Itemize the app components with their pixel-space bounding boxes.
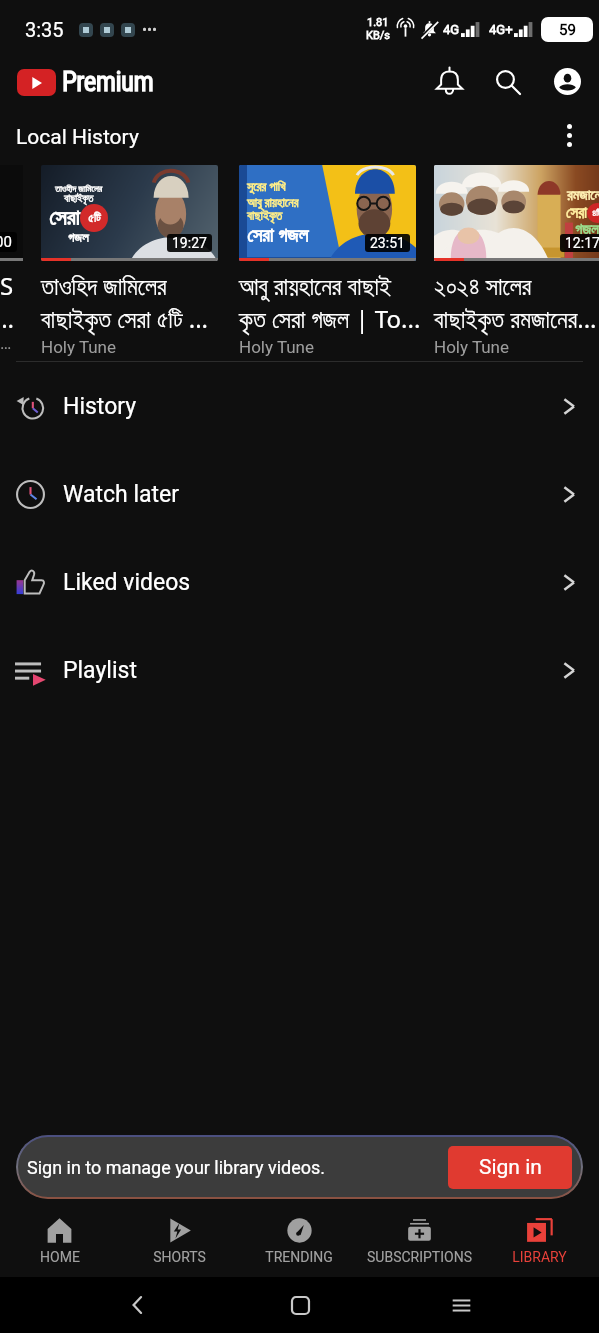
button[interactable]: Sign in — [448, 1146, 572, 1189]
staticText: বাছাইকৃত — [64, 194, 94, 204]
staticText: ২০২৪ সালের — [434, 269, 599, 302]
staticText: সেরা গজল — [247, 222, 309, 248]
staticText: HOME — [40, 1249, 80, 1265]
button[interactable]: YouTube Premium home — [17, 66, 154, 98]
staticText: SUBSCRIPTIONS — [367, 1249, 472, 1265]
button[interactable]: History — [0, 362, 599, 450]
button[interactable]: Back — [115, 1282, 161, 1328]
staticText: Premium — [62, 66, 154, 98]
staticText: ৫টি — [88, 212, 101, 224]
staticText: সেরা — [49, 207, 80, 229]
staticText: ••• — [142, 21, 158, 39]
staticText: Liked videos — [63, 569, 191, 596]
staticText: History — [63, 393, 137, 420]
staticText: ৪টি — [592, 209, 599, 218]
staticText: আবু রায়হানের — [247, 194, 299, 210]
staticText: Watch later — [63, 481, 180, 508]
button[interactable]: LIBRARY — [479, 1205, 599, 1277]
button[interactable]: TRENDING — [239, 1205, 359, 1277]
staticText: Holy Tune — [239, 337, 315, 357]
staticText: আবু রায়হানের বাছাই — [239, 269, 431, 302]
staticText: বাছাইকৃত রমজানের... — [434, 302, 599, 335]
button[interactable]: Liked videos — [0, 538, 599, 626]
button[interactable]: সুরের পাখি — [239, 165, 416, 357]
staticText: … — [0, 302, 14, 331]
staticText: 4G+ — [489, 22, 513, 37]
button[interactable]: SUBSCRIPTIONS — [359, 1205, 479, 1277]
button[interactable]: Home — [277, 1282, 323, 1328]
staticText: 12:17 — [565, 235, 599, 251]
staticText: 19:27 — [172, 235, 207, 251]
button[interactable]: More options — [547, 113, 591, 157]
staticText: Local History — [16, 125, 139, 150]
staticText: বাছাইকৃত — [247, 210, 283, 222]
button[interactable]: Account — [543, 58, 591, 105]
staticText: 4G — [443, 22, 460, 37]
staticText: … — [0, 333, 12, 353]
staticText: গজল — [575, 223, 599, 238]
button[interactable]: HOME — [0, 1205, 119, 1277]
staticText: 3:35 — [25, 18, 64, 41]
staticText: সেরা — [566, 206, 587, 221]
staticText: Playlist — [63, 657, 137, 684]
staticText: বাছাইকৃত সেরা ৫টি ... — [41, 302, 233, 335]
staticText: KB/s — [366, 29, 390, 42]
button[interactable]: Recent apps — [438, 1282, 484, 1328]
staticText: LIBRARY — [512, 1249, 567, 1265]
staticText: Holy Tune — [434, 337, 510, 357]
staticText: তাওহিদ জামিলের — [41, 269, 233, 302]
staticText: কৃত সেরা গজল | To... — [239, 302, 431, 335]
staticText: SHORTS — [153, 1249, 206, 1265]
staticText: সুরের পাখি — [247, 178, 286, 194]
staticText: রমজানের — [567, 189, 599, 203]
staticText: Sign in — [479, 1155, 542, 1180]
staticText: গজল — [68, 232, 89, 245]
staticText: 1.81 — [367, 16, 389, 29]
button[interactable]: রমজানের — [434, 165, 599, 357]
staticText: 0:00 — [0, 233, 12, 251]
staticText: Holy Tune — [41, 337, 117, 357]
staticText: 23:51 — [370, 235, 405, 251]
button[interactable]: Playlist — [0, 626, 599, 714]
button[interactable]: Notifications — [425, 58, 473, 105]
staticText: S — [0, 269, 14, 302]
button[interactable]: তাওহীদ জামিলের — [41, 165, 218, 357]
staticText: Sign in to manage your library videos. — [27, 1157, 326, 1178]
staticText: TRENDING — [265, 1249, 333, 1265]
staticText: 59 — [559, 21, 576, 39]
button[interactable]: Watch later — [0, 450, 599, 538]
staticText: তাওহীদ জামিলের — [55, 182, 103, 194]
button[interactable]: Sign in to manage your library videos. — [16, 1135, 583, 1199]
button[interactable]: Search — [484, 58, 532, 105]
button[interactable]: 0:00 — [0, 165, 23, 353]
button[interactable]: SHORTS — [119, 1205, 239, 1277]
